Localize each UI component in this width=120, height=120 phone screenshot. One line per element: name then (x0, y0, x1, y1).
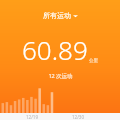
button[interactable]: 所有运动 (37, 9, 84, 22)
staticText: 公里 (89, 58, 98, 64)
staticText: 12 次运动 (48, 72, 73, 80)
staticText: 12/19 (26, 114, 38, 120)
staticText: 12/30 (72, 114, 84, 120)
staticText: 60.89 (22, 32, 88, 67)
staticText: 所有运动 (43, 11, 71, 20)
button[interactable]: Activity chart (0, 87, 120, 113)
